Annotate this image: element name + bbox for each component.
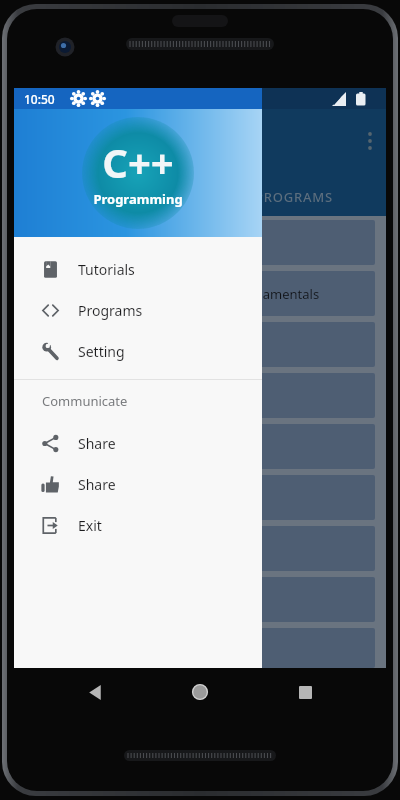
- staticText: Tutorials: [78, 260, 135, 279]
- button[interactable]: Home: [176, 668, 224, 716]
- button[interactable]: [18, 475, 375, 520]
- staticText: Share: [78, 434, 116, 453]
- button[interactable]: [18, 220, 375, 265]
- button[interactable]: Setting: [14, 331, 262, 372]
- button[interactable]: [18, 526, 375, 571]
- button[interactable]: Programs: [14, 290, 262, 331]
- button[interactable]: [18, 373, 375, 418]
- button[interactable]: Back: [71, 668, 119, 716]
- staticText: Setting: [78, 342, 125, 361]
- staticText: Fundamentals: [232, 285, 320, 303]
- button[interactable]: Recent apps: [281, 668, 329, 716]
- button[interactable]: Share: [14, 423, 262, 464]
- button[interactable]: Exit: [14, 505, 262, 546]
- button[interactable]: [18, 577, 375, 622]
- staticText: Programming: [93, 190, 183, 208]
- staticText: PROGRAMS: [255, 188, 334, 206]
- staticText: Programs: [78, 301, 143, 320]
- button[interactable]: Share: [14, 464, 262, 505]
- staticText: Exit: [78, 516, 102, 535]
- button[interactable]: Tutorials: [14, 249, 262, 290]
- button[interactable]: [18, 628, 375, 668]
- button[interactable]: More options: [350, 121, 390, 161]
- button[interactable]: Fundamentals: [18, 271, 375, 316]
- staticText: Communicate: [42, 392, 128, 410]
- staticText: C++: [102, 135, 174, 189]
- button[interactable]: [18, 424, 375, 469]
- button[interactable]: [18, 322, 375, 367]
- staticText: 10:50: [24, 91, 55, 107]
- staticText: Share: [78, 475, 116, 494]
